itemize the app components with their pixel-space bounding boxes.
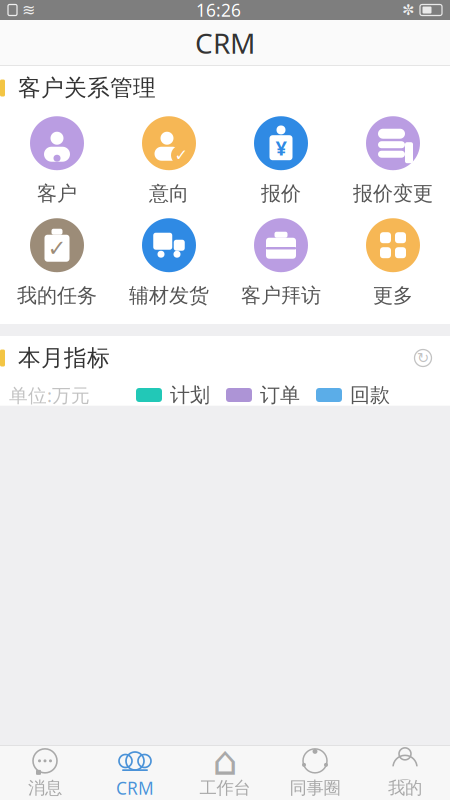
button[interactable]: ✓ [1,212,113,314]
button[interactable]: 报价变更 [337,110,449,212]
staticText: ≋ [22,1,35,19]
staticText: 回款 [350,383,390,407]
staticText: 意向 [149,181,189,206]
button[interactable]: ¥ [225,110,337,212]
staticText: 我的任务 [17,283,97,308]
button[interactable]: Refresh [406,338,440,378]
button[interactable]: 客户拜访 [225,212,337,314]
button[interactable]: 客户 [1,110,113,212]
staticText: 更多 [373,283,413,308]
staticText: 16:26 [196,0,241,21]
button[interactable]: 更多 [337,212,449,314]
button[interactable]: ⌂ [180,746,270,800]
staticText: 订单 [260,383,300,407]
staticText: ✓ [174,146,187,164]
staticText: ⌂ [212,738,237,784]
staticText: 工作台 [199,777,250,799]
staticText: 辅材发货 [129,283,209,308]
button[interactable]: ✓ [113,110,225,212]
staticText: CRM [116,776,154,799]
button[interactable]: 同事圈 [270,746,360,800]
staticText: 本月指标 [18,344,110,372]
staticText: ✓ [47,235,66,261]
staticText: ↻ [417,350,429,366]
staticText: CRM [195,24,255,62]
staticText: 客户关系管理 [18,74,156,102]
staticText: 报价变更 [353,181,433,206]
staticText: 我的 [388,777,422,799]
staticText: ✼ [402,2,414,18]
staticText: 同事圈 [289,777,340,799]
staticText: 计划 [170,383,210,407]
button[interactable]: 我的 [360,746,450,800]
staticText: 消息 [28,777,62,799]
staticText: ¥ [275,134,286,161]
staticText: 客户拜访 [241,283,321,308]
button[interactable]: 消息 [0,746,90,800]
button[interactable]: 辅材发货 [113,212,225,314]
staticText: 单位:万元 [9,383,90,407]
staticText: 报价 [261,181,301,206]
staticText: 客户 [37,181,77,206]
button[interactable]: CRM [90,746,180,800]
